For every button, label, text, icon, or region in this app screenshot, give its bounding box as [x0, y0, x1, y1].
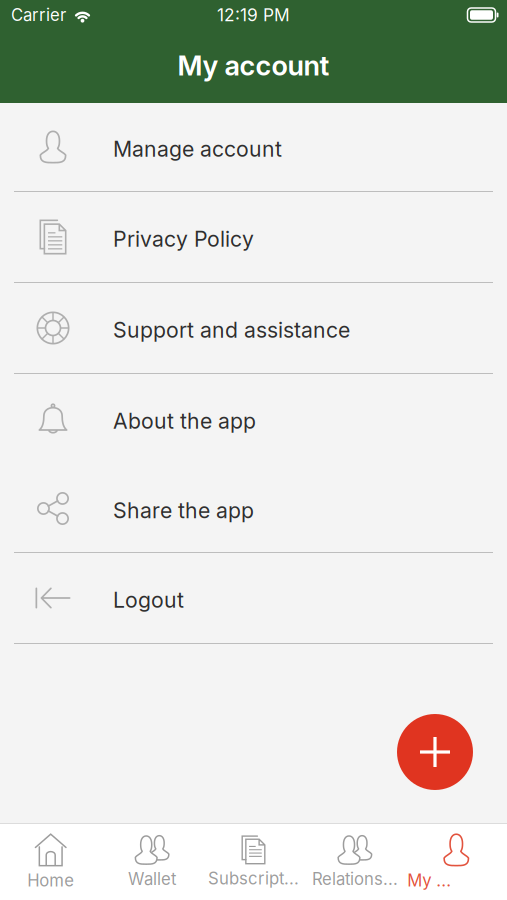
button[interactable]: Add: [392, 709, 478, 795]
button[interactable]: About the app: [0, 374, 507, 465]
staticText: Privacy Policy: [113, 226, 254, 252]
staticText: Share the app: [113, 498, 254, 523]
staticText: Home: [27, 870, 74, 891]
staticText: Support and assistance: [113, 317, 350, 343]
button[interactable]: Home: [0, 827, 101, 897]
staticText: Subscript...: [208, 868, 299, 889]
staticText: 12:19 PM: [217, 4, 290, 25]
staticText: About the app: [113, 408, 256, 434]
button[interactable]: Relations...: [304, 827, 406, 897]
button[interactable]: Privacy Policy: [0, 192, 507, 283]
button[interactable]: Logout: [0, 553, 507, 644]
button[interactable]: Share the app: [0, 465, 507, 553]
staticText: Carrier: [11, 5, 66, 25]
button[interactable]: Manage account: [0, 103, 507, 192]
staticText: Logout: [113, 587, 184, 613]
staticText: Manage account: [113, 136, 282, 162]
button[interactable]: Wallet: [101, 827, 203, 897]
button[interactable]: Support and assistance: [0, 283, 507, 374]
staticText: My ...: [407, 870, 451, 891]
staticText: Wallet: [128, 869, 176, 889]
staticText: My account: [177, 49, 329, 82]
staticText: Relations...: [312, 869, 398, 889]
button[interactable]: Subscript...: [203, 827, 304, 897]
button[interactable]: My ...: [406, 827, 507, 897]
